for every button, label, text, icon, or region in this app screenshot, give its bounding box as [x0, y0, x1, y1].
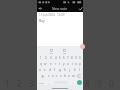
- button[interactable]: 7: [66, 55, 70, 61]
- button[interactable]: 1: [38, 55, 43, 61]
- staticText: t: [59, 62, 61, 66]
- staticText: j: [69, 68, 70, 72]
- button[interactable]: Back: [38, 6, 43, 11]
- staticText: m: [72, 74, 75, 78]
- staticText: ,: [48, 81, 49, 85]
- staticText: 4: [55, 56, 57, 60]
- button[interactable]: o: [74, 61, 78, 67]
- staticText: 0: [79, 56, 81, 60]
- button[interactable]: 3: [48, 55, 53, 61]
- staticText: b: [64, 74, 66, 78]
- staticText: s: [44, 68, 46, 72]
- button[interactable]: Symbols: [38, 80, 44, 86]
- staticText: 1: [5, 78, 10, 89]
- staticText: 2: [17, 78, 22, 89]
- staticText: 0: [109, 78, 114, 89]
- button[interactable]: Shift: [38, 73, 46, 79]
- button[interactable]: 0: [78, 55, 82, 61]
- button[interactable]: u: [66, 61, 70, 67]
- staticText: c: [56, 74, 58, 78]
- button[interactable]: n: [67, 73, 71, 79]
- button[interactable]: g: [57, 67, 62, 73]
- button[interactable]: Period: [70, 80, 74, 86]
- button[interactable]: y: [62, 61, 66, 67]
- button[interactable]: b: [63, 73, 67, 79]
- staticText: i: [72, 62, 73, 66]
- staticText: h: [64, 68, 66, 72]
- staticText: l: [79, 68, 80, 72]
- button[interactable]: 8: [70, 55, 74, 61]
- button[interactable]: e: [48, 61, 53, 67]
- button[interactable]: l: [77, 67, 82, 73]
- staticText: .: [72, 81, 73, 85]
- staticText: r: [55, 62, 57, 66]
- button[interactable]: z: [46, 73, 51, 79]
- staticText: a: [39, 68, 41, 72]
- button[interactable]: f: [52, 67, 57, 73]
- staticText: f: [54, 68, 56, 72]
- staticText: o: [75, 62, 77, 66]
- button[interactable]: c: [55, 73, 59, 79]
- staticText: 9: [97, 78, 102, 89]
- button[interactable]: q: [38, 61, 43, 67]
- staticText: 7: [67, 56, 69, 60]
- staticText: k: [74, 68, 76, 72]
- staticText: e: [50, 62, 52, 66]
- button[interactable]: p: [78, 61, 82, 67]
- staticText: d: [49, 68, 51, 72]
- staticText: 9: [75, 56, 77, 60]
- staticText: New note: [52, 6, 68, 11]
- button[interactable]: 4: [53, 55, 58, 61]
- button[interactable]: r: [53, 61, 58, 67]
- staticText: v: [60, 74, 62, 78]
- staticText: 2: [45, 56, 47, 60]
- button[interactable]: i: [70, 61, 74, 67]
- staticText: 1: [40, 56, 42, 60]
- button[interactable]: Stickers: [48, 49, 54, 54]
- button[interactable]: Save: [78, 6, 83, 11]
- button[interactable]: t: [58, 61, 62, 67]
- staticText: 15 Jun 2024 14:09: [39, 13, 65, 17]
- button[interactable]: 6: [62, 55, 66, 61]
- button[interactable]: 5: [58, 55, 62, 61]
- button[interactable]: v: [59, 73, 63, 79]
- button[interactable]: 9: [74, 55, 78, 61]
- button[interactable]: 15 Jun 2024 14:09: [39, 13, 83, 23]
- staticText: g: [59, 68, 61, 72]
- button[interactable]: Enter: [77, 80, 82, 85]
- button[interactable]: w: [43, 61, 48, 67]
- button[interactable]: a: [38, 67, 42, 73]
- staticText: x: [52, 74, 54, 78]
- button[interactable]: x: [51, 73, 55, 79]
- staticText: q: [40, 62, 42, 66]
- staticText: 8: [71, 56, 73, 60]
- staticText: 3: [29, 78, 34, 89]
- button[interactable]: k: [72, 67, 77, 73]
- staticText: y: [63, 62, 65, 66]
- button[interactable]: Backspace: [75, 73, 82, 79]
- staticText: u: [67, 62, 69, 66]
- button[interactable]: Comma: [46, 80, 51, 86]
- staticText: Buy: [39, 19, 45, 23]
- staticText: 6: [63, 56, 65, 60]
- button[interactable]: m: [71, 73, 75, 79]
- button[interactable]: 2: [43, 55, 48, 61]
- button[interactable]: j: [67, 67, 72, 73]
- staticText: n: [68, 74, 70, 78]
- staticText: 3: [50, 56, 52, 60]
- staticText: z: [48, 74, 50, 78]
- button[interactable]: s: [42, 67, 47, 73]
- button[interactable]: h: [62, 67, 67, 73]
- staticText: w: [44, 62, 47, 66]
- staticText: ?123: [39, 82, 44, 85]
- staticText: p: [79, 62, 81, 66]
- staticText: 5: [59, 56, 61, 60]
- button[interactable]: d: [47, 67, 52, 73]
- button[interactable]: Clipboard: [61, 49, 67, 54]
- staticText: 8: [85, 78, 90, 89]
